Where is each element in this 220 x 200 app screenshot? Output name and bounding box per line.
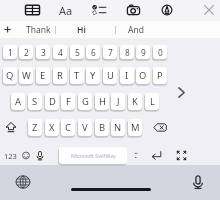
- button[interactable]: Emoji: [20, 147, 32, 164]
- button[interactable]: 0: [153, 45, 167, 59]
- staticText: V: [82, 121, 88, 134]
- staticText: 0: [158, 47, 163, 58]
- button[interactable]: Switch keyboard language: [14, 173, 32, 191]
- button[interactable]: Aa: [58, 2, 74, 18]
- button[interactable]: 2: [19, 45, 33, 59]
- button[interactable]: F: [61, 93, 75, 110]
- button[interactable]: 7: [103, 45, 117, 59]
- button[interactable]: Resize keyboard: [175, 147, 188, 164]
- button[interactable]: M: [128, 119, 142, 136]
- staticText: 3: [41, 47, 46, 58]
- button[interactable]: Checklist: [92, 2, 108, 18]
- button[interactable]: T: [70, 67, 84, 84]
- button[interactable]: 6: [86, 45, 100, 59]
- staticText: And: [128, 24, 144, 36]
- staticText: M: [131, 121, 140, 134]
- button[interactable]: Voice input: [189, 173, 207, 191]
- button[interactable]: N: [111, 119, 125, 136]
- staticText: D: [49, 95, 56, 108]
- staticText: K: [132, 95, 138, 108]
- staticText: Z: [32, 121, 38, 134]
- button[interactable]: Q: [3, 67, 17, 84]
- button[interactable]: Insert table: [25, 2, 40, 18]
- button[interactable]: D: [45, 93, 59, 110]
- staticText: I: [125, 69, 129, 82]
- button[interactable]: L: [145, 93, 159, 110]
- button[interactable]: J: [111, 93, 125, 110]
- staticText: 1: [8, 47, 13, 58]
- staticText: G: [82, 95, 89, 108]
- button[interactable]: K: [128, 93, 142, 110]
- staticText: P: [157, 69, 163, 82]
- button[interactable]: Z: [28, 119, 42, 136]
- button[interactable]: W: [19, 67, 33, 84]
- button[interactable]: 4: [53, 45, 67, 59]
- staticText: 9: [141, 47, 146, 58]
- button[interactable]: 5: [70, 45, 84, 59]
- button[interactable]: 9: [136, 45, 150, 59]
- staticText: Aa: [59, 3, 73, 18]
- button[interactable]: I: [120, 67, 134, 84]
- button[interactable]: Hi: [55, 21, 107, 38]
- button[interactable]: Microsoft SwiftKey: [59, 147, 127, 164]
- staticText: 4: [58, 47, 63, 58]
- button[interactable]: 123: [2, 147, 19, 164]
- staticText: Q: [6, 69, 14, 82]
- staticText: S: [32, 95, 38, 108]
- button[interactable]: 3: [36, 45, 50, 59]
- staticText: Microsoft SwiftKey: [71, 152, 116, 159]
- button[interactable]: Enter: [150, 147, 163, 164]
- staticText: Hi: [77, 24, 86, 36]
- staticText: B: [99, 121, 106, 134]
- staticText: 123: [4, 151, 17, 161]
- button[interactable]: O: [136, 67, 150, 84]
- button[interactable]: Close: [202, 2, 216, 18]
- staticText: X: [49, 121, 55, 134]
- staticText: 2: [24, 47, 29, 58]
- staticText: U: [107, 69, 114, 82]
- button[interactable]: X: [45, 119, 59, 136]
- staticText: T: [74, 69, 80, 82]
- button[interactable]: B: [95, 119, 109, 136]
- button[interactable]: C: [61, 119, 75, 136]
- button[interactable]: Shift: [2, 119, 20, 136]
- staticText: N: [114, 121, 122, 134]
- staticText: A: [15, 95, 22, 108]
- staticText: W: [22, 69, 31, 82]
- staticText: Y: [90, 69, 96, 82]
- staticText: Thank: [26, 24, 51, 36]
- button[interactable]: Dictation: [34, 147, 46, 164]
- button[interactable]: G: [78, 93, 92, 110]
- button[interactable]: Thank: [16, 21, 60, 38]
- staticText: L: [150, 95, 155, 108]
- button[interactable]: 8: [120, 45, 134, 59]
- staticText: F: [66, 95, 71, 108]
- button[interactable]: A: [11, 93, 25, 110]
- staticText: J: [117, 95, 120, 108]
- button[interactable]: E: [36, 67, 50, 84]
- button[interactable]: Add word: [0, 21, 16, 38]
- staticText: R: [57, 69, 63, 82]
- button[interactable]: R: [53, 67, 67, 84]
- button[interactable]: Camera: [126, 2, 141, 18]
- button[interactable]: Punctuation: [130, 147, 142, 164]
- staticText: 7: [108, 47, 113, 58]
- staticText: O: [139, 69, 147, 82]
- staticText: H: [99, 95, 106, 108]
- button[interactable]: Markup: [160, 2, 174, 18]
- button[interactable]: P: [153, 67, 167, 84]
- staticText: 8: [125, 47, 130, 58]
- staticText: 6: [91, 47, 96, 58]
- staticText: E: [40, 69, 46, 82]
- staticText: C: [65, 121, 71, 134]
- button[interactable]: Y: [86, 67, 100, 84]
- button[interactable]: H: [95, 93, 109, 110]
- button[interactable]: And: [115, 21, 157, 38]
- button[interactable]: S: [28, 93, 42, 110]
- button[interactable]: Move keyboard right: [174, 85, 189, 100]
- button[interactable]: Backspace: [150, 119, 170, 136]
- button[interactable]: V: [78, 119, 92, 136]
- staticText: 5: [75, 47, 80, 58]
- button[interactable]: 1: [3, 45, 17, 59]
- button[interactable]: U: [103, 67, 117, 84]
